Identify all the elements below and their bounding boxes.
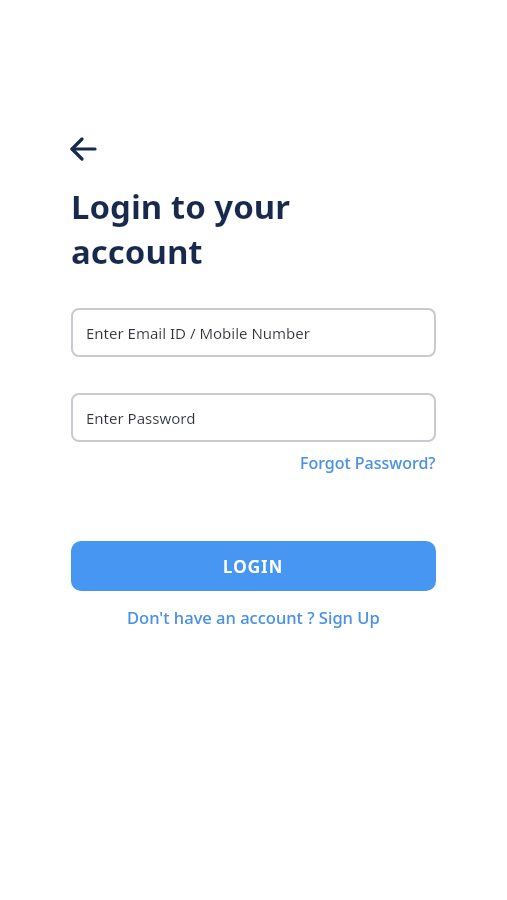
staticText: Enter Password <box>86 408 196 428</box>
staticText: Forgot Password? <box>300 452 436 474</box>
button[interactable] <box>71 134 101 164</box>
button[interactable]: Don't have an account ? Sign Up <box>127 606 380 628</box>
button[interactable]: Forgot Password? <box>300 452 436 474</box>
button[interactable]: LOGIN <box>71 541 436 591</box>
staticText: Enter Email ID / Mobile Number <box>86 323 310 343</box>
staticText: Login to your account <box>71 184 291 273</box>
button[interactable]: Enter Password <box>71 393 436 442</box>
staticText: LOGIN <box>223 555 284 578</box>
button[interactable]: Enter Email ID / Mobile Number <box>71 308 436 357</box>
staticText: Don't have an account ? Sign Up <box>127 606 380 628</box>
